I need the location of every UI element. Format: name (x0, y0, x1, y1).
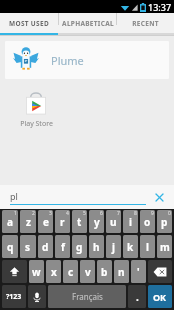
button[interactable]: f (55, 235, 70, 258)
staticText: l (146, 240, 149, 254)
staticText: f (61, 240, 65, 254)
button[interactable]: MOST USED (0, 13, 58, 33)
staticText: m (160, 240, 170, 254)
staticText: v (85, 265, 91, 279)
button[interactable]: Play Store (10, 92, 62, 129)
button[interactable]: Shift (2, 260, 27, 283)
button[interactable]: 7 (106, 210, 121, 233)
button[interactable]: c (63, 260, 78, 283)
staticText: d (42, 240, 49, 254)
button[interactable]: 0 (157, 210, 172, 233)
button[interactable]: l (140, 235, 155, 258)
staticText: u (110, 215, 117, 229)
button[interactable]: 3 (38, 210, 53, 233)
staticText: 13:37 (148, 1, 172, 13)
staticText: RECENT (132, 19, 159, 28)
button[interactable]: 5 (72, 210, 87, 233)
staticText: ALPHABETICAL (62, 19, 114, 28)
staticText: 4 (66, 210, 69, 217)
button[interactable]: Backspace (148, 260, 172, 283)
button[interactable]: b (97, 260, 112, 283)
button[interactable]: g (72, 235, 87, 258)
button[interactable]: ?123 (2, 285, 26, 308)
staticText: 5 (83, 210, 86, 217)
staticText: . (136, 290, 139, 304)
staticText: p (161, 215, 168, 229)
staticText: 0 (168, 210, 171, 217)
staticText: j (112, 240, 115, 254)
staticText: g (76, 240, 83, 254)
button[interactable]: 8 (123, 210, 138, 233)
staticText: Plume (51, 53, 84, 68)
button[interactable]: Voice input (28, 285, 46, 308)
staticText: q (7, 240, 14, 254)
staticText: 6 (100, 210, 103, 217)
button[interactable]: j (106, 235, 121, 258)
button[interactable]: x (46, 260, 61, 283)
button[interactable]: RECENT (117, 13, 174, 33)
button[interactable]: h (89, 235, 104, 258)
staticText: 8 (134, 210, 137, 217)
button[interactable]: k (123, 235, 138, 258)
staticText: ' (137, 265, 140, 279)
button[interactable]: d (38, 235, 53, 258)
button[interactable]: Clear search (151, 189, 167, 205)
button[interactable]: . (128, 285, 146, 308)
button[interactable]: v (80, 260, 95, 283)
staticText: r (60, 215, 65, 229)
button[interactable]: pl (10, 190, 146, 205)
staticText: n (118, 265, 125, 279)
staticText: MOST USED (9, 19, 49, 28)
staticText: h (93, 240, 100, 254)
staticText: 2 (32, 210, 35, 217)
button[interactable]: OK (148, 285, 172, 308)
staticText: a (7, 215, 13, 229)
staticText: ?123 (6, 292, 22, 302)
staticText: z (26, 215, 31, 229)
button[interactable]: 2 (20, 210, 36, 233)
staticText: 3 (49, 210, 52, 217)
staticText: x (51, 265, 57, 279)
staticText: e (43, 215, 49, 229)
button[interactable]: 6 (89, 210, 104, 233)
button[interactable]: w (29, 260, 44, 283)
staticText: 7 (117, 210, 120, 217)
button[interactable]: Plume (5, 41, 169, 79)
button[interactable]: 1 (2, 210, 18, 233)
staticText: k (127, 240, 134, 254)
staticText: w (32, 265, 41, 279)
staticText: c (68, 265, 74, 279)
staticText: y (94, 215, 100, 229)
button[interactable]: 9 (140, 210, 155, 233)
button[interactable]: s (20, 235, 36, 258)
staticText: 9 (151, 210, 154, 217)
button[interactable]: 4 (55, 210, 70, 233)
button[interactable]: q (2, 235, 18, 258)
staticText: Français (72, 291, 103, 302)
staticText: i (129, 215, 132, 229)
button[interactable]: m (157, 235, 172, 258)
staticText: 1 (14, 210, 17, 217)
staticText: s (25, 240, 31, 254)
staticText: o (144, 215, 151, 229)
staticText: OK (153, 291, 167, 303)
staticText: Play Store (20, 119, 53, 129)
staticText: pl (10, 190, 18, 202)
button[interactable]: ALPHABETICAL (59, 13, 116, 33)
button[interactable]: n (114, 260, 129, 283)
staticText: t (77, 215, 82, 229)
button[interactable]: ' (131, 260, 146, 283)
button[interactable]: Français (48, 285, 126, 308)
staticText: b (101, 265, 108, 279)
